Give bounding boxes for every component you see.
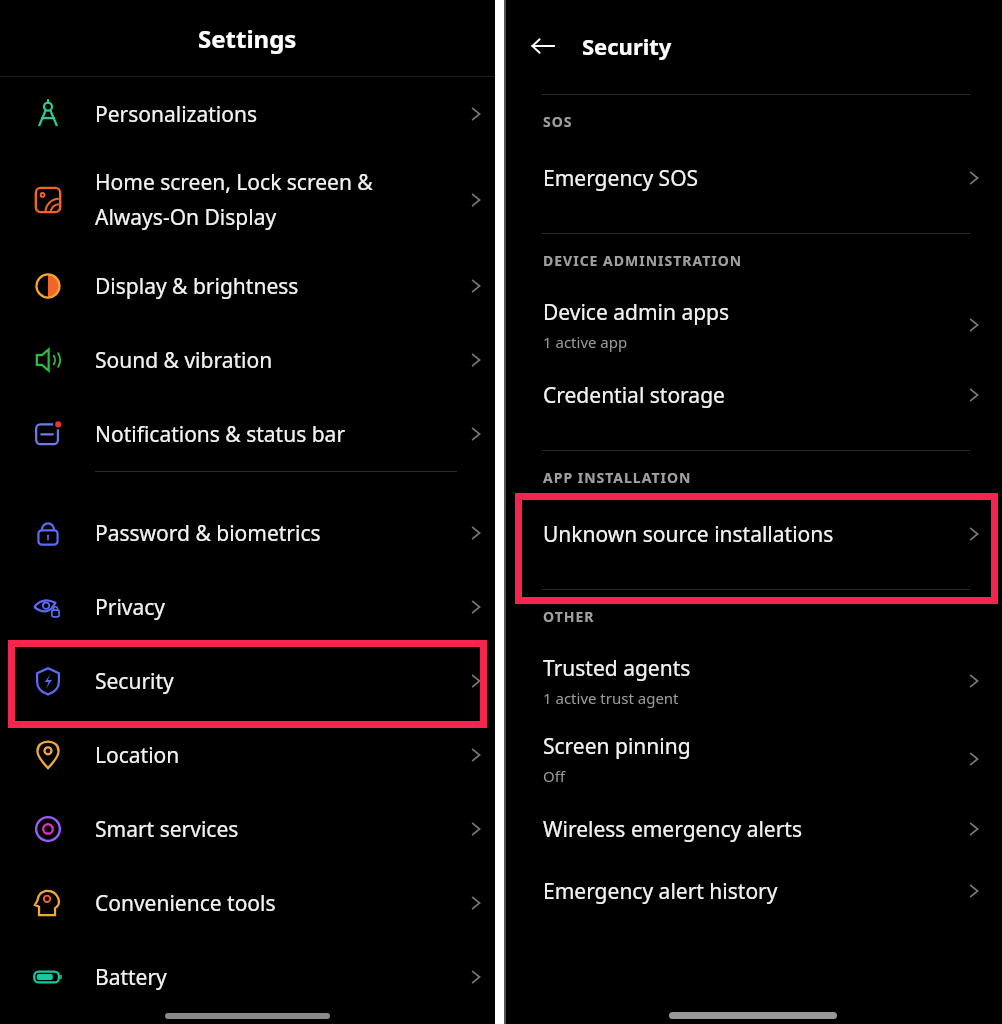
staticText: Device admin apps xyxy=(543,298,730,327)
button[interactable]: Trusted agents xyxy=(504,642,1002,720)
button[interactable]: Emergency alert history xyxy=(504,860,1002,922)
button[interactable]: Back xyxy=(504,20,582,72)
button[interactable]: Display & brightness xyxy=(0,249,495,323)
button[interactable]: Battery xyxy=(0,940,495,1014)
staticText: Off xyxy=(543,766,566,786)
staticText: Credential storage xyxy=(543,381,725,410)
staticText: Convenience tools xyxy=(95,889,457,918)
staticText: APP INSTALLATION xyxy=(543,468,692,487)
staticText: Password & biometrics xyxy=(95,519,457,548)
staticText: Notifications & status bar xyxy=(95,420,457,449)
staticText: OTHER xyxy=(543,607,595,626)
button[interactable]: Credential storage xyxy=(504,364,1002,426)
staticText: Security xyxy=(582,31,672,61)
staticText: Always-On Display xyxy=(95,203,277,232)
button[interactable]: Wireless emergency alerts xyxy=(504,798,1002,860)
staticText: Privacy xyxy=(95,593,457,622)
staticText: DEVICE ADMINISTRATION xyxy=(543,251,743,270)
staticText: Security xyxy=(95,667,457,696)
staticText: Wireless emergency alerts xyxy=(543,815,803,844)
staticText: Location xyxy=(95,741,457,770)
staticText: SOS xyxy=(543,112,573,131)
staticText: Battery xyxy=(95,963,457,992)
button[interactable]: Location xyxy=(0,718,495,792)
staticText: Smart services xyxy=(95,815,457,844)
staticText: Personalizations xyxy=(95,100,457,129)
button[interactable]: Smart services xyxy=(0,792,495,866)
button[interactable]: Unknown source installations xyxy=(504,503,1002,565)
staticText: 1 active trust agent xyxy=(543,688,679,708)
staticText: Trusted agents xyxy=(543,654,691,683)
staticText: Sound & vibration xyxy=(95,346,457,375)
staticText: Unknown source installations xyxy=(543,520,834,549)
staticText: Home screen, Lock screen & xyxy=(95,168,373,197)
button[interactable]: Security xyxy=(0,644,495,718)
button[interactable]: Personalizations xyxy=(0,77,495,151)
button[interactable]: Emergency SOS xyxy=(504,147,1002,209)
button[interactable]: Home screen, Lock screen & xyxy=(0,151,495,249)
button[interactable]: Convenience tools xyxy=(0,866,495,940)
button[interactable]: Sound & vibration xyxy=(0,323,495,397)
button[interactable]: Device admin apps xyxy=(504,286,1002,364)
staticText: Emergency alert history xyxy=(543,877,778,906)
button[interactable]: Privacy xyxy=(0,570,495,644)
staticText: Emergency SOS xyxy=(543,164,699,193)
staticText: Display & brightness xyxy=(95,272,457,301)
button[interactable]: Password & biometrics xyxy=(0,496,495,570)
staticText: Screen pinning xyxy=(543,732,691,761)
button[interactable]: Screen pinning xyxy=(504,720,1002,798)
button[interactable]: Notifications & status bar xyxy=(0,397,495,471)
staticText: Settings xyxy=(198,22,297,55)
staticText: 1 active app xyxy=(543,332,628,352)
